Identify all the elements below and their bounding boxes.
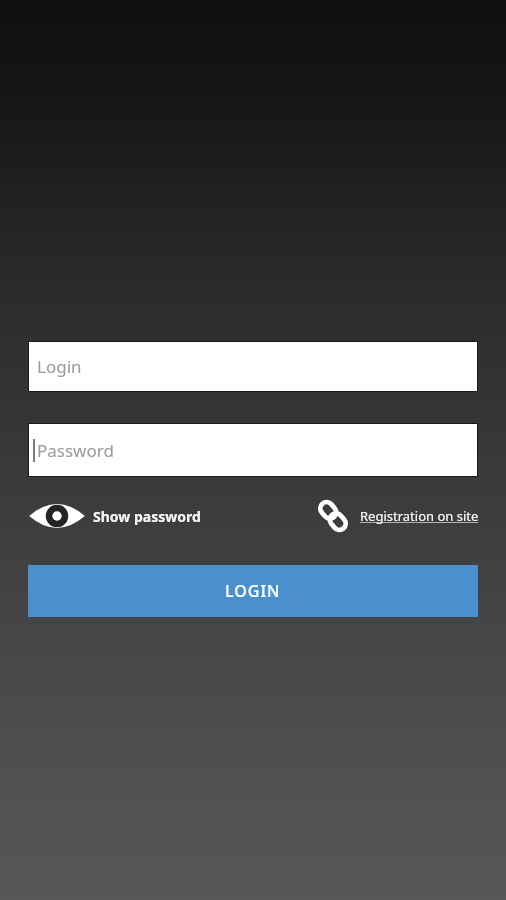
staticText: Password [37,439,114,462]
staticText: LOGIN [225,580,281,602]
staticText: Show password [93,507,201,526]
other: Registration on site [312,495,354,537]
staticText: Registration on site [360,507,479,525]
button[interactable]: Registration on site [312,495,479,537]
button[interactable]: Show password [28,499,201,533]
button[interactable]: LOGIN [28,565,478,617]
button[interactable]: Password [28,423,478,477]
button[interactable]: Login [28,341,478,392]
other: Show password [28,499,86,533]
staticText: Login [37,355,82,378]
